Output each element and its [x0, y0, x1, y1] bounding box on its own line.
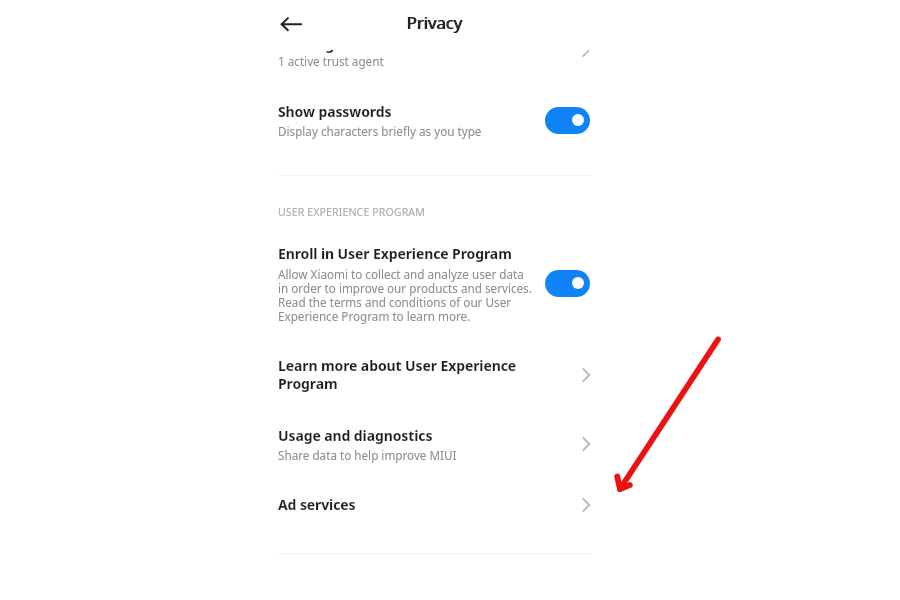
staticText: Privacy	[384, 11, 484, 34]
staticText: Display characters briefly as you type	[278, 123, 482, 139]
staticText: Allow Xiaomi to collect and analyze user…	[278, 266, 532, 325]
staticText: Privacy	[385, 11, 485, 34]
button[interactable]: Enroll in User Experience Program	[545, 270, 590, 297]
staticText: Learn more about User Experience Program	[278, 356, 517, 393]
button[interactable]: Back	[274, 8, 306, 40]
button[interactable]	[260, 236, 608, 334]
staticText: 1 active trust agent	[278, 53, 384, 69]
staticText: Enroll in User Experience Program	[278, 244, 512, 263]
button[interactable]: Show passwords	[545, 107, 590, 134]
button[interactable]	[260, 483, 608, 527]
button[interactable]	[260, 345, 608, 407]
staticText: Ad services	[278, 495, 356, 514]
staticText: Usage and diagnostics	[278, 426, 433, 445]
staticText: USER EXPERIENCE PROGRAM	[278, 205, 425, 219]
staticText: Trust agents	[278, 35, 365, 54]
button[interactable]	[260, 416, 608, 474]
button[interactable]	[260, 47, 608, 84]
button[interactable]	[260, 92, 608, 150]
staticText: Share data to help improve MIUI	[278, 447, 457, 463]
staticText: Show passwords	[278, 102, 392, 121]
